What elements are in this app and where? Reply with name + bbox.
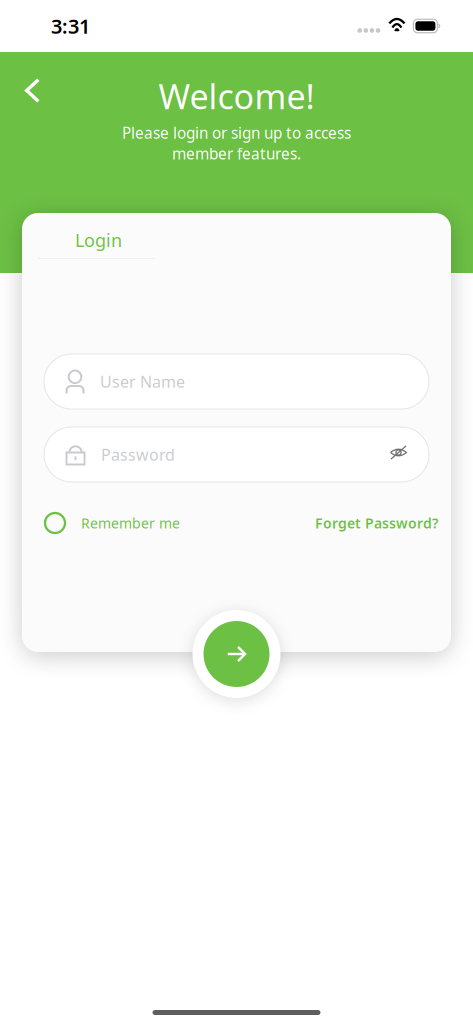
button[interactable]: Show password (387, 444, 410, 464)
staticText: Login (75, 228, 122, 252)
staticText: Password (101, 444, 175, 465)
staticText: member features. (172, 143, 301, 164)
staticText: Please login or sign up to access (122, 122, 351, 143)
button[interactable]: Forget Password? (315, 506, 438, 540)
button[interactable]: Login (22, 213, 451, 259)
staticText: Forget Password? (315, 513, 438, 533)
staticText: Remember me (81, 513, 180, 533)
staticText: User Name (100, 371, 185, 392)
button[interactable]: Continue (192, 610, 280, 698)
button[interactable]: Remember me (45, 506, 180, 540)
button[interactable]: Back (13, 66, 52, 115)
staticText: 3:31 (51, 12, 90, 40)
staticText: Welcome! (158, 73, 314, 119)
